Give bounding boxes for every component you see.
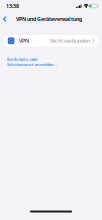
staticText: 13:38 [6, 2, 19, 10]
button[interactable]: Back [0, 14, 9, 24]
staticText: Bei Arbeits- oder Schulaccount anmelden … [7, 56, 58, 67]
staticText: Nicht verbunden [50, 37, 90, 44]
button[interactable]: Bei Arbeits- oder Schulaccount anmelden … [0, 56, 102, 67]
staticText: VPN [19, 37, 29, 44]
button[interactable]: VPN [3, 35, 98, 46]
staticText: VPN und Geräteverwaltung [16, 15, 82, 23]
